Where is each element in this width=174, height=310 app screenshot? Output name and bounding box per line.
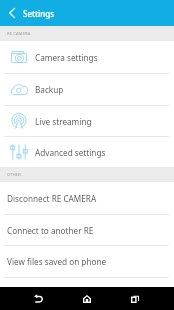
button[interactable]: Backup — [0, 74, 174, 106]
button[interactable]: Back — [0, 0, 23, 26]
staticText: Backup — [35, 84, 64, 95]
staticText: View files saved on phone — [7, 256, 107, 267]
button[interactable]: Disconnect RE CAMERA — [0, 182, 174, 215]
staticText: Advanced settings — [35, 147, 106, 158]
button[interactable]: Home — [63, 287, 110, 310]
button[interactable]: Live streaming — [0, 106, 174, 137]
button[interactable]: Recent apps — [111, 287, 158, 310]
button[interactable]: View files saved on phone — [0, 246, 174, 278]
staticText: Settings — [23, 8, 55, 19]
button[interactable]: Back — [15, 287, 62, 310]
staticText: Live streaming — [35, 116, 92, 127]
staticText: RE CAMERA — [7, 31, 31, 36]
button[interactable]: Connect to another RE — [0, 215, 174, 246]
staticText: Connect to another RE — [7, 225, 94, 236]
button[interactable]: Advanced settings — [0, 137, 174, 167]
staticText: Disconnect RE CAMERA — [7, 193, 97, 204]
button[interactable]: Camera settings — [0, 41, 174, 74]
staticText: OTHER — [7, 172, 21, 177]
staticText: Camera settings — [35, 52, 98, 63]
